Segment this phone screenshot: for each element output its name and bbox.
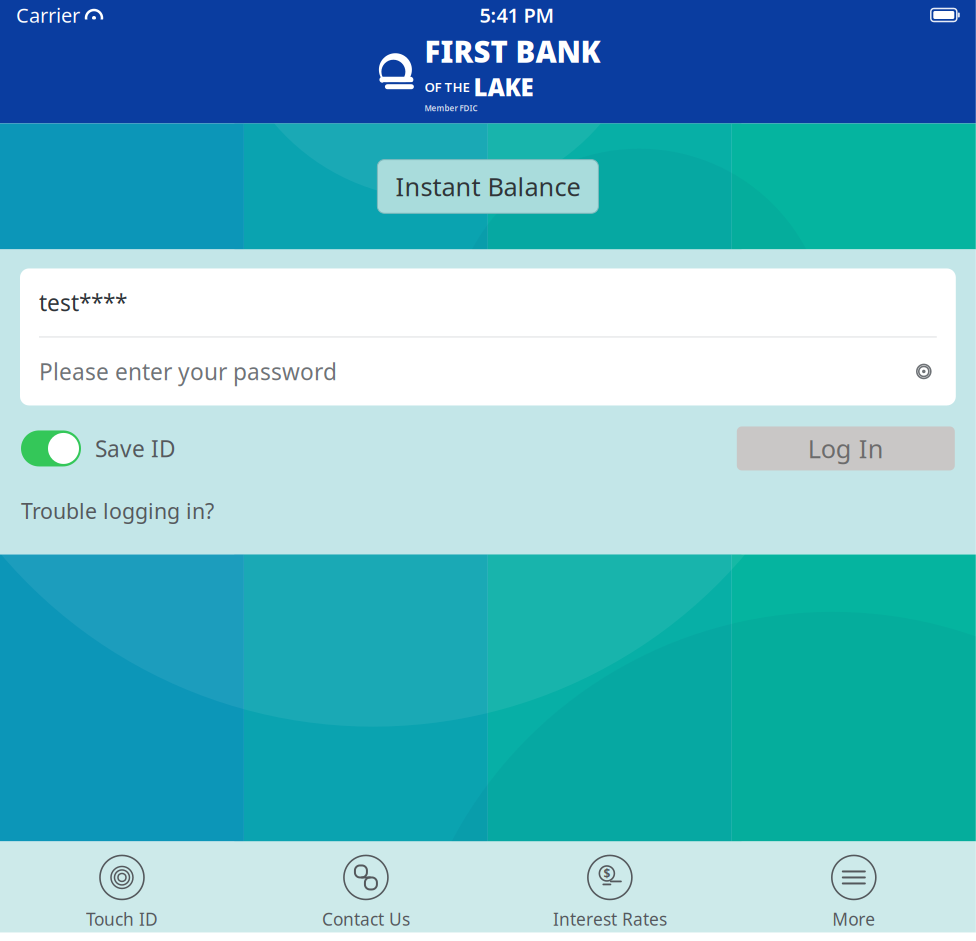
staticText: Instant Balance [395, 170, 580, 203]
staticText: LAKE [473, 71, 533, 103]
button[interactable]: Trouble logging in? [21, 496, 214, 525]
staticText: Touch ID [86, 907, 158, 930]
button[interactable]: Contact Us [244, 851, 488, 932]
staticText: Trouble logging in? [21, 496, 214, 525]
staticText: Carrier [16, 2, 80, 28]
button[interactable]: $ [488, 851, 732, 932]
button[interactable]: Log In [737, 426, 955, 470]
button[interactable]: Save ID [21, 430, 176, 466]
staticText: Interest Rates [553, 907, 667, 930]
staticText: FIRST BANK [424, 32, 600, 71]
staticText: Save ID [95, 433, 176, 463]
staticText: OF THE [424, 78, 469, 96]
button[interactable]: Show password [904, 351, 944, 391]
button[interactable]: More [732, 851, 976, 932]
button[interactable]: Instant Balance [377, 160, 598, 213]
staticText: $ [603, 865, 610, 881]
staticText: Contact Us [322, 907, 410, 930]
staticText: 5:41 PM [479, 2, 554, 28]
staticText: Member FDIC [424, 103, 477, 113]
staticText: Please enter your password [39, 356, 337, 386]
staticText: More [832, 907, 875, 930]
button[interactable]: Touch ID [0, 851, 244, 932]
staticText: Log In [808, 432, 884, 465]
staticText: test**** [39, 287, 127, 317]
